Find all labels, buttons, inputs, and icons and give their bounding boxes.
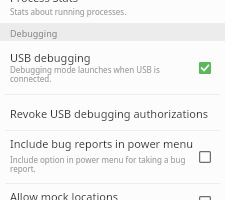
staticText: Allow mock locations [10,189,119,200]
button[interactable]: Allow mock locations [0,183,225,200]
button[interactable]: Option disabled [199,196,211,200]
button[interactable]: Process Stats [0,0,225,23]
staticText: Stats about running processes. [10,6,127,17]
staticText: Revoke USB debugging authorizations [10,106,209,121]
button[interactable]: Revoke USB debugging authorizations [0,94,225,130]
staticText: Process Stats [10,0,78,5]
button[interactable]: USB debugging enabled [199,62,211,74]
button[interactable]: USB debugging [0,41,225,94]
button[interactable]: Option disabled [199,151,211,163]
staticText: Debugging [10,27,58,39]
staticText: Include option in power menu for taking … [10,154,190,175]
staticText: Include bug reports in power menu [10,136,194,151]
staticText: USB debugging [10,50,91,65]
button[interactable]: Include bug reports in power menu [0,130,225,183]
staticText: Debugging mode launches when USB is conn… [10,64,190,85]
